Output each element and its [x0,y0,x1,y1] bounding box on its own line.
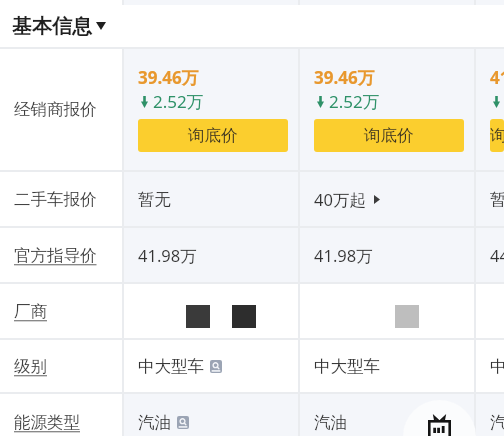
button[interactable]: 中大型车 [298,340,474,392]
button[interactable]: 暂无 [474,172,504,226]
staticText: 基本信息 [12,14,92,39]
button[interactable]: 领券礼包 [403,400,476,436]
button[interactable] [298,284,474,338]
staticText: 二手车报价 [14,189,97,210]
button[interactable] [122,284,298,338]
staticText: 暂无 [138,189,171,210]
staticText: 询底价 [364,125,414,146]
staticText: 询底价 [490,125,504,146]
button[interactable]: 汽油 [298,394,474,436]
button[interactable]: 汽油 [474,394,504,436]
staticText: 2.52万 [153,90,204,113]
staticText: 40万起 [314,188,366,211]
staticText: 中大型车 [138,356,204,377]
button[interactable]: 44.98万 [474,228,504,282]
button[interactable]: 能源类型 [0,394,122,436]
staticText: 39.46万 [314,66,375,89]
staticText: 41.98万 [490,66,504,89]
button[interactable]: 级别 [0,340,122,392]
button[interactable]: 39.46万 [298,49,474,170]
staticText: 汽油 [490,412,504,433]
staticText: 中大型车 [490,356,504,377]
button[interactable]: 询底价 [138,119,288,152]
button[interactable]: 二手车报价 [0,172,122,226]
button[interactable] [474,284,504,338]
button[interactable]: 厂商 [0,284,122,338]
button[interactable]: 经销商报价 [0,49,122,170]
staticText: 44.98万 [490,244,504,267]
button[interactable]: 40万起 [298,172,474,226]
button[interactable]: 中大型车 [122,340,298,392]
button[interactable]: 汽油 [122,394,298,436]
staticText: 2.52万 [329,90,380,113]
staticText: 官方指导价 [14,245,97,266]
button[interactable]: 官方指导价 [0,228,122,282]
staticText: 汽油 [138,412,171,433]
button[interactable]: 41.98万 [474,49,504,170]
staticText: 询底价 [188,125,238,146]
button[interactable]: 41.98万 [298,228,474,282]
staticText: 39.46万 [138,66,199,89]
staticText: 能源类型 [14,412,80,433]
button[interactable]: 暂无 [122,172,298,226]
staticText: 经销商报价 [14,99,97,120]
staticText: 级别 [14,356,47,377]
button[interactable]: 询底价 [314,119,464,152]
button[interactable]: 中大型车 [474,340,504,392]
staticText: 厂商 [14,301,47,322]
staticText: 中大型车 [314,356,380,377]
staticText: 41.98万 [138,244,197,267]
button[interactable]: 41.98万 [122,228,298,282]
button[interactable]: 询底价 [490,119,504,152]
staticText: 暂无 [490,189,504,210]
button[interactable]: 基本信息 [12,5,106,47]
staticText: 汽油 [314,412,347,433]
staticText: 41.98万 [314,244,373,267]
button[interactable]: 39.46万 [122,49,298,170]
